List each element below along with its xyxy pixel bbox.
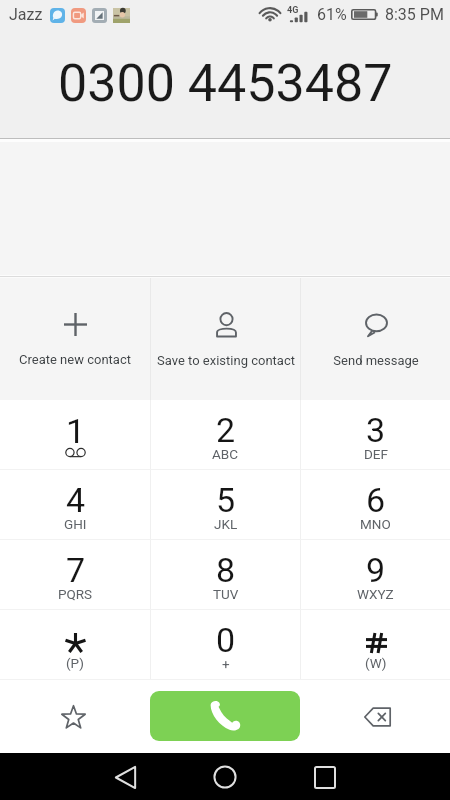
button[interactable]: 2: [151, 400, 300, 469]
staticText: JKL: [214, 516, 238, 532]
staticText: DEF: [364, 446, 388, 462]
button[interactable]: Back: [102, 754, 148, 800]
button[interactable]: (W): [301, 610, 450, 679]
button[interactable]: Save to existing contact: [151, 278, 300, 400]
staticText: (P): [66, 655, 84, 671]
button[interactable]: 8: [151, 540, 300, 609]
staticText: WXYZ: [357, 586, 394, 602]
button[interactable]: Create new contact: [0, 278, 150, 400]
button[interactable]: 6: [301, 470, 450, 539]
button[interactable]: Send message: [301, 278, 450, 400]
staticText: 0: [216, 620, 236, 660]
button[interactable]: Favorites: [48, 692, 98, 742]
staticText: ABC: [212, 446, 239, 462]
staticText: 3: [366, 410, 386, 450]
button[interactable]: 3: [301, 400, 450, 469]
staticText: 4G: [287, 5, 299, 16]
staticText: 8:35 PM: [385, 5, 444, 24]
button[interactable]: 0: [151, 610, 300, 679]
staticText: Save to existing contact: [157, 353, 295, 368]
staticText: Jazz: [9, 5, 43, 24]
staticText: 1: [66, 411, 86, 451]
button[interactable]: 4: [0, 470, 150, 539]
staticText: 0300 4453487: [58, 53, 393, 114]
staticText: MNO: [360, 516, 391, 532]
button[interactable]: 5: [151, 470, 300, 539]
button[interactable]: 9: [301, 540, 450, 609]
staticText: 61%: [317, 5, 347, 24]
button[interactable]: Recents: [302, 754, 348, 800]
button[interactable]: Call: [150, 691, 300, 741]
staticText: 6: [366, 480, 386, 520]
staticText: +: [222, 656, 230, 672]
staticText: GHI: [64, 516, 87, 532]
staticText: TUV: [213, 586, 239, 602]
staticText: 9: [366, 550, 386, 590]
button[interactable]: Delete: [352, 692, 402, 742]
staticText: 7: [66, 550, 86, 590]
staticText: PQRS: [58, 586, 93, 602]
staticText: 5: [216, 480, 236, 520]
staticText: (W): [365, 655, 387, 671]
staticText: 2: [216, 410, 236, 450]
button[interactable]: Home: [202, 754, 248, 800]
staticText: Create new contact: [19, 352, 131, 367]
button[interactable]: (P): [0, 610, 150, 679]
staticText: 4: [66, 480, 86, 520]
staticText: Send message: [333, 353, 419, 368]
button[interactable]: 1: [0, 400, 150, 469]
staticText: 8: [216, 550, 236, 590]
button[interactable]: 7: [0, 540, 150, 609]
